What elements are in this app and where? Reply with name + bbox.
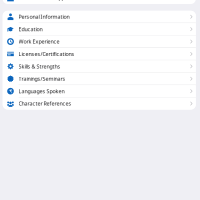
button[interactable]: Skills & Strengths xyxy=(3,60,196,72)
button[interactable]: Education xyxy=(3,23,196,35)
button[interactable]: Work Experience xyxy=(3,36,196,47)
staticText: Personal Information xyxy=(19,13,70,20)
button[interactable]: Trainings/Seminars xyxy=(3,73,196,85)
staticText: Trainings/Seminars xyxy=(19,75,66,82)
staticText: Education xyxy=(19,26,43,33)
button[interactable]: Character References xyxy=(3,98,196,109)
button[interactable]: Personal Information xyxy=(3,11,196,23)
staticText: Languages Spoken xyxy=(19,88,65,95)
staticText: Licenses/Certifications xyxy=(19,50,75,57)
button[interactable]: Licenses/Certifications xyxy=(3,48,196,60)
staticText: Work Experience xyxy=(19,38,60,45)
button[interactable]: Date & Time of Application xyxy=(0,0,200,4)
staticText: Date & Time of Application xyxy=(19,0,82,2)
staticText: Skills & Strengths xyxy=(19,63,61,70)
button[interactable]: Languages Spoken xyxy=(3,85,196,97)
staticText: Character References xyxy=(19,100,72,107)
